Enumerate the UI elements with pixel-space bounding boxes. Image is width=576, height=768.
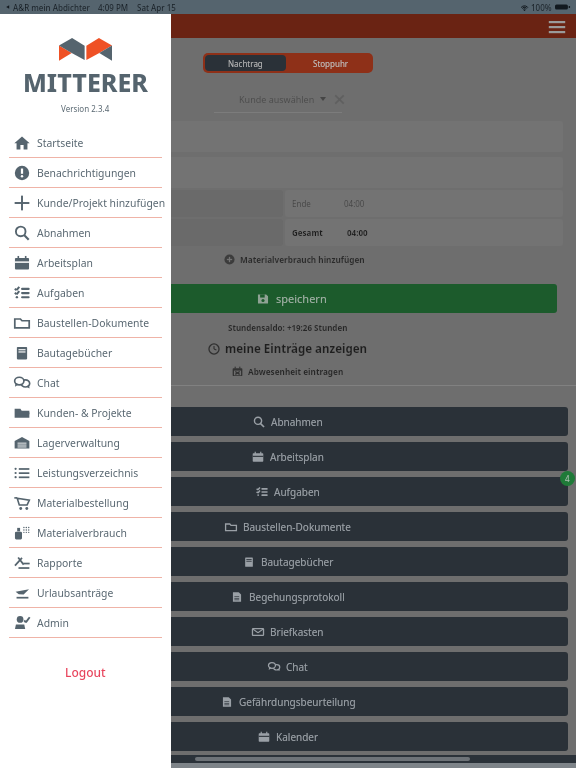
staticText: 04:00 bbox=[344, 198, 365, 209]
staticText: MITTERER bbox=[23, 65, 148, 99]
button[interactable]: meine Einträge anzeigen bbox=[208, 341, 368, 357]
button[interactable]: Abnahmen bbox=[0, 218, 171, 248]
button[interactable]: Bautagebücher bbox=[0, 338, 171, 368]
button[interactable]: Materialverbrauch hinzufügen bbox=[224, 254, 365, 265]
staticText: Urlaubsanträge bbox=[37, 586, 114, 600]
staticText: Bautagebücher bbox=[261, 555, 334, 569]
staticText: Startseite bbox=[37, 136, 84, 150]
staticText: Admin bbox=[37, 616, 69, 630]
staticText: Version 2.3.4 bbox=[61, 103, 110, 114]
button[interactable]: Leistungsverzeichnis bbox=[0, 458, 171, 488]
staticText: 100% bbox=[531, 2, 552, 13]
staticText: Lagerverwaltung bbox=[37, 436, 120, 450]
staticText: Kunde/Projekt hinzufügen bbox=[37, 196, 166, 210]
staticText: Arbeitsplan bbox=[270, 450, 324, 464]
staticText: Stoppuhr bbox=[313, 58, 349, 69]
button[interactable]: Clear customer bbox=[334, 94, 345, 105]
staticText: Kalender bbox=[276, 730, 319, 744]
button[interactable]: Aufgaben bbox=[0, 278, 171, 308]
button[interactable]: speichern bbox=[10, 284, 557, 313]
staticText: Stundensaldo: +19:26 Stunden bbox=[228, 322, 348, 333]
staticText: 04:00 bbox=[347, 227, 368, 238]
staticText: Kunde auswählen bbox=[239, 93, 315, 105]
button[interactable]: Gefährdungsbeurteilung bbox=[8, 687, 568, 716]
staticText: 4 bbox=[565, 473, 570, 484]
staticText: meine Einträge anzeigen bbox=[225, 341, 368, 357]
button[interactable]: Rapporte bbox=[0, 548, 171, 578]
button[interactable]: Abnahmen bbox=[8, 407, 568, 436]
button[interactable]: Chat bbox=[0, 368, 171, 398]
staticText: Materialverbrauch hinzufügen bbox=[240, 254, 365, 265]
button[interactable]: Open navigation menu bbox=[547, 16, 567, 36]
button[interactable]: Benachrichtigungen bbox=[0, 158, 171, 188]
staticText: Arbeitsplan bbox=[37, 256, 93, 270]
staticText: Chat bbox=[37, 376, 60, 390]
staticText: Abnahmen bbox=[271, 415, 323, 429]
staticText: Logout bbox=[65, 664, 106, 680]
staticText: Bautagebücher bbox=[37, 346, 113, 360]
staticText: Sat Apr 15 bbox=[137, 2, 176, 13]
button[interactable]: Briefkasten bbox=[8, 617, 568, 646]
staticText: Kunden- & Projekte bbox=[37, 406, 132, 420]
staticText: Gesamt bbox=[292, 227, 323, 238]
staticText: Aufgaben bbox=[37, 286, 85, 300]
button[interactable]: Stoppuhr bbox=[288, 53, 373, 73]
button[interactable]: Admin bbox=[0, 608, 171, 638]
staticText: Chat bbox=[286, 660, 308, 674]
button[interactable]: Kunde auswählen bbox=[239, 93, 326, 105]
button[interactable]: Kunden- & Projekte bbox=[0, 398, 171, 428]
button[interactable]: Begehungsprotokoll bbox=[8, 582, 568, 611]
staticText: Briefkasten bbox=[270, 625, 324, 639]
staticText: A&R mein Abdichter bbox=[13, 2, 90, 13]
staticText: speichern bbox=[276, 291, 327, 306]
staticText: Begehungsprotokoll bbox=[249, 590, 345, 604]
button[interactable]: Startseite bbox=[0, 128, 171, 158]
button[interactable]: Kunde/Projekt hinzufügen bbox=[0, 188, 171, 218]
staticText: Rapporte bbox=[37, 556, 83, 570]
staticText: Abwesenheit eintragen bbox=[248, 366, 344, 377]
button[interactable]: Materialbestellung bbox=[0, 488, 171, 518]
button[interactable]: Aufgaben bbox=[8, 477, 568, 506]
button[interactable]: Urlaubsanträge bbox=[0, 578, 171, 608]
staticText: Baustellen-Dokumente bbox=[37, 316, 150, 330]
staticText: Aufgaben bbox=[274, 485, 320, 499]
staticText: 4:09 PM bbox=[98, 2, 129, 13]
button[interactable]: Chat bbox=[8, 652, 568, 681]
staticText: Leistungsverzeichnis bbox=[37, 466, 139, 480]
staticText: Kunden- & Projekte bbox=[251, 757, 343, 768]
button[interactable]: Lagerverwaltung bbox=[0, 428, 171, 458]
staticText: Nachtrag bbox=[228, 58, 263, 69]
button[interactable]: Kunden- & Projekte bbox=[8, 757, 568, 768]
staticText: Ende bbox=[292, 198, 311, 209]
button[interactable]: Materialverbrauch bbox=[0, 518, 171, 548]
button[interactable]: Arbeitsplan bbox=[8, 442, 568, 471]
button[interactable]: Arbeitsplan bbox=[0, 248, 171, 278]
staticText: Baustellen-Dokumente bbox=[243, 520, 351, 534]
button[interactable]: Logout bbox=[55, 660, 116, 684]
button[interactable]: Baustellen-Dokumente bbox=[8, 512, 568, 541]
staticText: Benachrichtigungen bbox=[37, 166, 136, 180]
button[interactable]: Baustellen-Dokumente bbox=[0, 308, 171, 338]
button[interactable]: Bautagebücher bbox=[8, 547, 568, 576]
button[interactable]: Kalender bbox=[8, 722, 568, 751]
staticText: Gefährdungsbeurteilung bbox=[239, 695, 356, 709]
button[interactable]: Nachtrag bbox=[205, 55, 286, 71]
button[interactable]: Abwesenheit eintragen bbox=[232, 366, 344, 377]
staticText: Abnahmen bbox=[37, 226, 91, 240]
staticText: Materialverbrauch bbox=[37, 526, 127, 540]
staticText: Materialbestellung bbox=[37, 496, 129, 510]
